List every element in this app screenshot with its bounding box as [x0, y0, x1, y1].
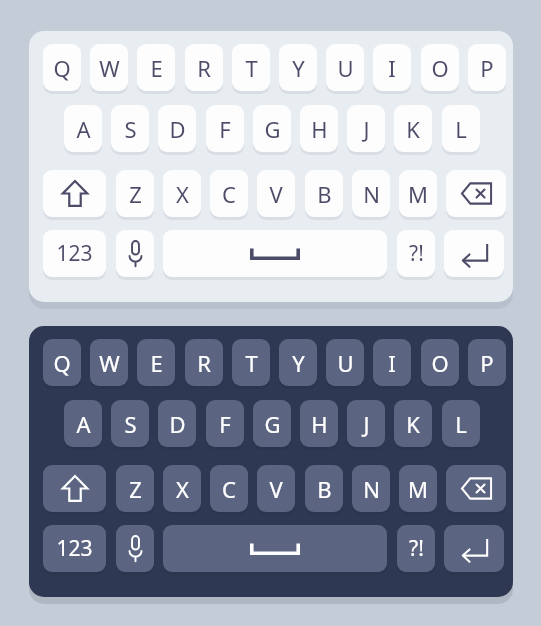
button[interactable]: K — [394, 400, 432, 447]
staticText: S — [124, 114, 137, 144]
staticText: Y — [292, 348, 305, 378]
staticText: ?! — [409, 534, 424, 563]
staticText: Z — [129, 474, 142, 504]
button[interactable]: B — [305, 465, 343, 512]
staticText: N — [363, 474, 380, 504]
button[interactable]: T — [232, 339, 270, 386]
button[interactable]: S — [111, 105, 149, 152]
button[interactable]: F — [206, 400, 244, 447]
staticText: P — [480, 53, 494, 83]
button[interactable]: I — [373, 44, 411, 91]
button[interactable]: P — [468, 339, 506, 386]
staticText: H — [311, 409, 328, 439]
staticText: E — [150, 53, 163, 83]
button[interactable]: Voice input — [116, 525, 154, 572]
button[interactable]: Backspace — [446, 170, 506, 217]
button[interactable]: ?! — [397, 230, 435, 277]
button[interactable]: U — [326, 339, 364, 386]
button[interactable]: D — [158, 400, 196, 447]
button[interactable]: ?! — [397, 525, 435, 572]
button[interactable]: J — [347, 105, 385, 152]
button[interactable]: A — [64, 400, 102, 447]
button[interactable]: F — [206, 105, 244, 152]
button[interactable]: I — [373, 339, 411, 386]
button[interactable]: Enter — [444, 230, 504, 277]
button[interactable]: L — [442, 105, 480, 152]
staticText: G — [264, 409, 281, 439]
staticText: R — [197, 348, 211, 378]
button[interactable]: X — [163, 170, 201, 217]
button[interactable]: M — [399, 465, 437, 512]
button[interactable]: B — [305, 170, 343, 217]
staticText: N — [363, 179, 380, 209]
staticText: L — [455, 114, 467, 144]
button[interactable]: N — [352, 170, 390, 217]
staticText: D — [169, 114, 186, 144]
staticText: M — [408, 474, 428, 504]
staticText: F — [219, 409, 231, 439]
button[interactable]: C — [210, 170, 248, 217]
staticText: I — [388, 53, 396, 83]
button[interactable]: 123 — [43, 230, 106, 277]
button[interactable]: G — [253, 400, 291, 447]
button[interactable]: Z — [116, 465, 154, 512]
staticText: U — [337, 53, 354, 83]
button[interactable]: E — [137, 339, 175, 386]
button[interactable]: E — [137, 44, 175, 91]
button[interactable]: X — [163, 465, 201, 512]
staticText: G — [264, 114, 281, 144]
staticText: Z — [129, 179, 142, 209]
staticText: C — [222, 474, 236, 504]
button[interactable]: M — [399, 170, 437, 217]
button[interactable]: V — [257, 170, 295, 217]
button[interactable]: W — [90, 339, 128, 386]
button[interactable]: G — [253, 105, 291, 152]
button[interactable]: Space — [163, 230, 387, 277]
button[interactable]: R — [185, 44, 223, 91]
button[interactable]: V — [257, 465, 295, 512]
button[interactable]: N — [352, 465, 390, 512]
staticText: Q — [53, 53, 71, 83]
button[interactable]: H — [300, 400, 338, 447]
staticText: K — [406, 409, 420, 439]
button[interactable]: Space — [163, 525, 387, 572]
button[interactable]: T — [232, 44, 270, 91]
button[interactable]: Q — [43, 44, 81, 91]
button[interactable]: S — [111, 400, 149, 447]
staticText: O — [431, 53, 449, 83]
button[interactable]: O — [421, 44, 459, 91]
staticText: F — [219, 114, 231, 144]
button[interactable]: 123 — [43, 525, 106, 572]
button[interactable]: A — [64, 105, 102, 152]
button[interactable]: H — [300, 105, 338, 152]
button[interactable]: Y — [279, 44, 317, 91]
staticText: C — [222, 179, 236, 209]
button[interactable]: C — [210, 465, 248, 512]
staticText: X — [176, 474, 189, 504]
button[interactable]: Y — [279, 339, 317, 386]
staticText: V — [269, 179, 283, 209]
button[interactable]: L — [442, 400, 480, 447]
staticText: W — [99, 348, 120, 378]
staticText: A — [76, 409, 91, 439]
button[interactable]: J — [347, 400, 385, 447]
button[interactable]: Z — [116, 170, 154, 217]
button[interactable]: U — [326, 44, 364, 91]
button[interactable]: Q — [43, 339, 81, 386]
button[interactable]: Shift — [43, 465, 106, 512]
staticText: H — [311, 114, 328, 144]
button[interactable]: R — [185, 339, 223, 386]
button[interactable]: D — [158, 105, 196, 152]
button[interactable]: W — [90, 44, 128, 91]
button[interactable]: P — [468, 44, 506, 91]
button[interactable]: O — [421, 339, 459, 386]
button[interactable]: Shift — [43, 170, 106, 217]
button[interactable]: K — [394, 105, 432, 152]
staticText: T — [245, 348, 258, 378]
button[interactable]: Voice input — [116, 230, 154, 277]
staticText: D — [169, 409, 186, 439]
button[interactable]: Enter — [444, 525, 504, 572]
staticText: P — [480, 348, 494, 378]
staticText: S — [124, 409, 137, 439]
button[interactable]: Backspace — [446, 465, 506, 512]
